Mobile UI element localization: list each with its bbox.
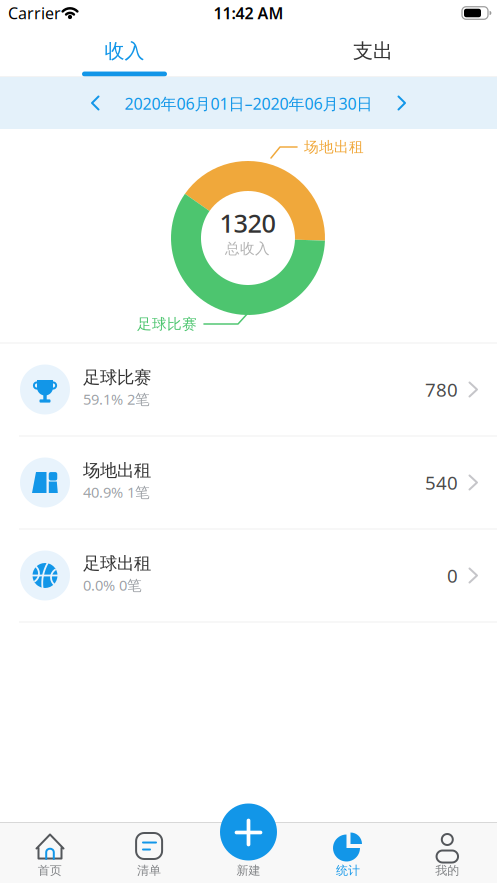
staticText: 收入 [104, 39, 144, 63]
staticText: 40.9% 1笔 [83, 482, 150, 502]
staticText: 11:42 AM [213, 2, 283, 24]
staticText: 2020年06月01日–2020年06月30日 [124, 93, 372, 114]
staticText: 540 [425, 470, 458, 495]
staticText: 场地出租 [304, 138, 364, 156]
staticText: 1320 [219, 206, 275, 240]
staticText: 新建 [236, 863, 260, 878]
staticText: 我的 [435, 863, 459, 878]
staticText: Carrier [8, 2, 61, 24]
staticText: 780 [425, 377, 458, 402]
staticText: 总收入 [225, 239, 270, 257]
staticText: 0.0% 0笔 [83, 575, 142, 595]
staticText: 清单 [137, 863, 161, 878]
staticText: 统计 [336, 863, 360, 878]
staticText: 足球比赛 [137, 315, 197, 333]
staticText: 59.1% 2笔 [83, 389, 150, 409]
staticText: 首页 [38, 863, 62, 878]
staticText: 0 [447, 563, 458, 588]
staticText: 场地出租 [83, 460, 151, 481]
staticText: 支出 [353, 39, 393, 63]
staticText: 足球出租 [83, 553, 151, 574]
staticText: 足球比赛 [83, 367, 151, 388]
